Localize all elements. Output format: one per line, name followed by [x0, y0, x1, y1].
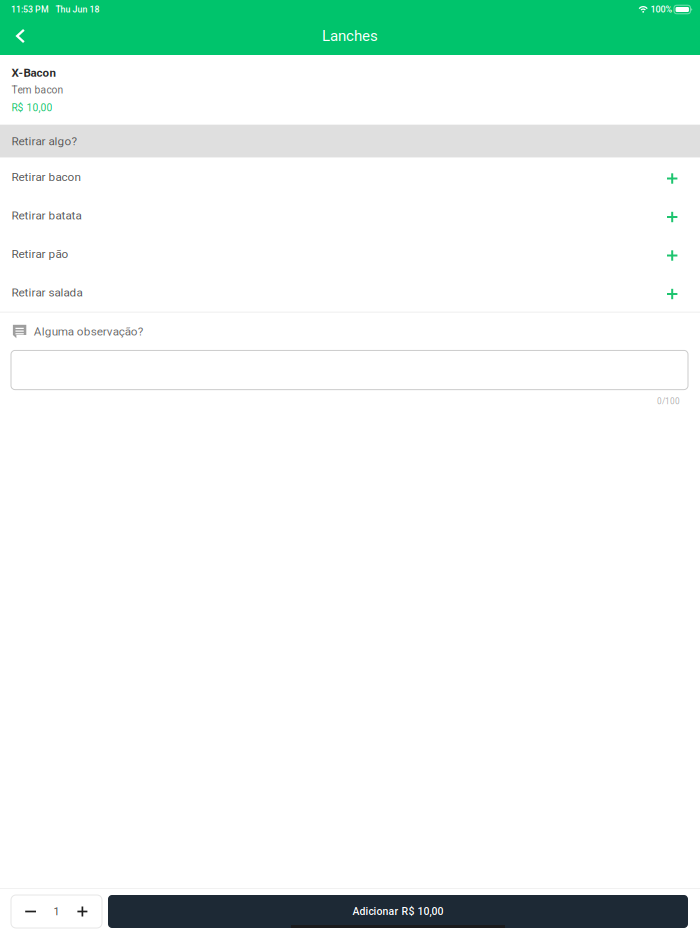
staticText: Retirar batata: [11, 208, 81, 222]
staticText: Retirar pão: [11, 247, 68, 261]
staticText: Thu Jun 18: [56, 4, 100, 15]
staticText: Adicionar R$ 10,00: [352, 905, 443, 918]
button[interactable]: Retirar salada: [0, 273, 700, 312]
button[interactable]: Decrease quantity: [11, 895, 50, 928]
staticText: 0/100: [657, 397, 680, 406]
staticText: Tem bacon: [11, 84, 63, 96]
staticText: 1: [53, 905, 59, 918]
button[interactable]: Increase quantity: [63, 895, 102, 928]
staticText: X-Bacon: [11, 66, 56, 80]
staticText: Alguma observação?: [34, 325, 144, 338]
staticText: Lanches: [322, 27, 378, 45]
button[interactable]: Retirar batata: [0, 196, 700, 235]
staticText: Retirar algo?: [11, 134, 77, 148]
staticText: Retirar bacon: [11, 170, 80, 184]
button[interactable]: Adicionar R$ 10,00: [108, 895, 688, 928]
staticText: 11:53 PM: [11, 4, 49, 15]
staticText: 100%: [651, 4, 673, 15]
button[interactable]: Retirar bacon: [0, 158, 700, 196]
button[interactable]: Back: [0, 19, 41, 55]
staticText: R$ 10,00: [11, 102, 52, 114]
staticText: Retirar salada: [11, 285, 82, 299]
button[interactable]: Retirar pão: [0, 235, 700, 273]
